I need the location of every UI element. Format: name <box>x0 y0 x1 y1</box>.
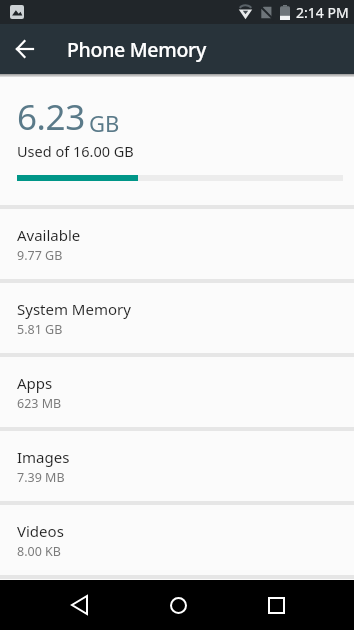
staticText: 5.81 GB <box>17 321 63 338</box>
staticText: 8.00 KB <box>17 543 61 560</box>
staticText: 7.39 MB <box>17 469 65 486</box>
staticText: Apps <box>17 373 53 393</box>
staticText: Available <box>17 225 81 245</box>
button[interactable]: Available <box>0 209 354 279</box>
staticText: 9.77 GB <box>17 247 63 264</box>
staticText: 623 MB <box>17 395 62 412</box>
button[interactable]: Images <box>0 431 354 501</box>
staticText: Used of 16.00 GB <box>17 141 134 161</box>
staticText: 2:14 PM <box>296 3 349 22</box>
staticText: 6.23 <box>17 93 85 141</box>
staticText: Phone Memory <box>67 36 206 63</box>
button[interactable] <box>251 580 301 630</box>
button[interactable]: Videos <box>0 505 354 575</box>
staticText: Videos <box>17 521 64 541</box>
button[interactable] <box>0 24 50 74</box>
button[interactable] <box>54 580 104 630</box>
button[interactable] <box>153 580 203 630</box>
button[interactable]: System Memory <box>0 283 354 353</box>
staticText: GB <box>89 108 120 138</box>
staticText: System Memory <box>17 299 131 319</box>
staticText: Images <box>17 447 70 467</box>
button[interactable]: Apps <box>0 357 354 427</box>
